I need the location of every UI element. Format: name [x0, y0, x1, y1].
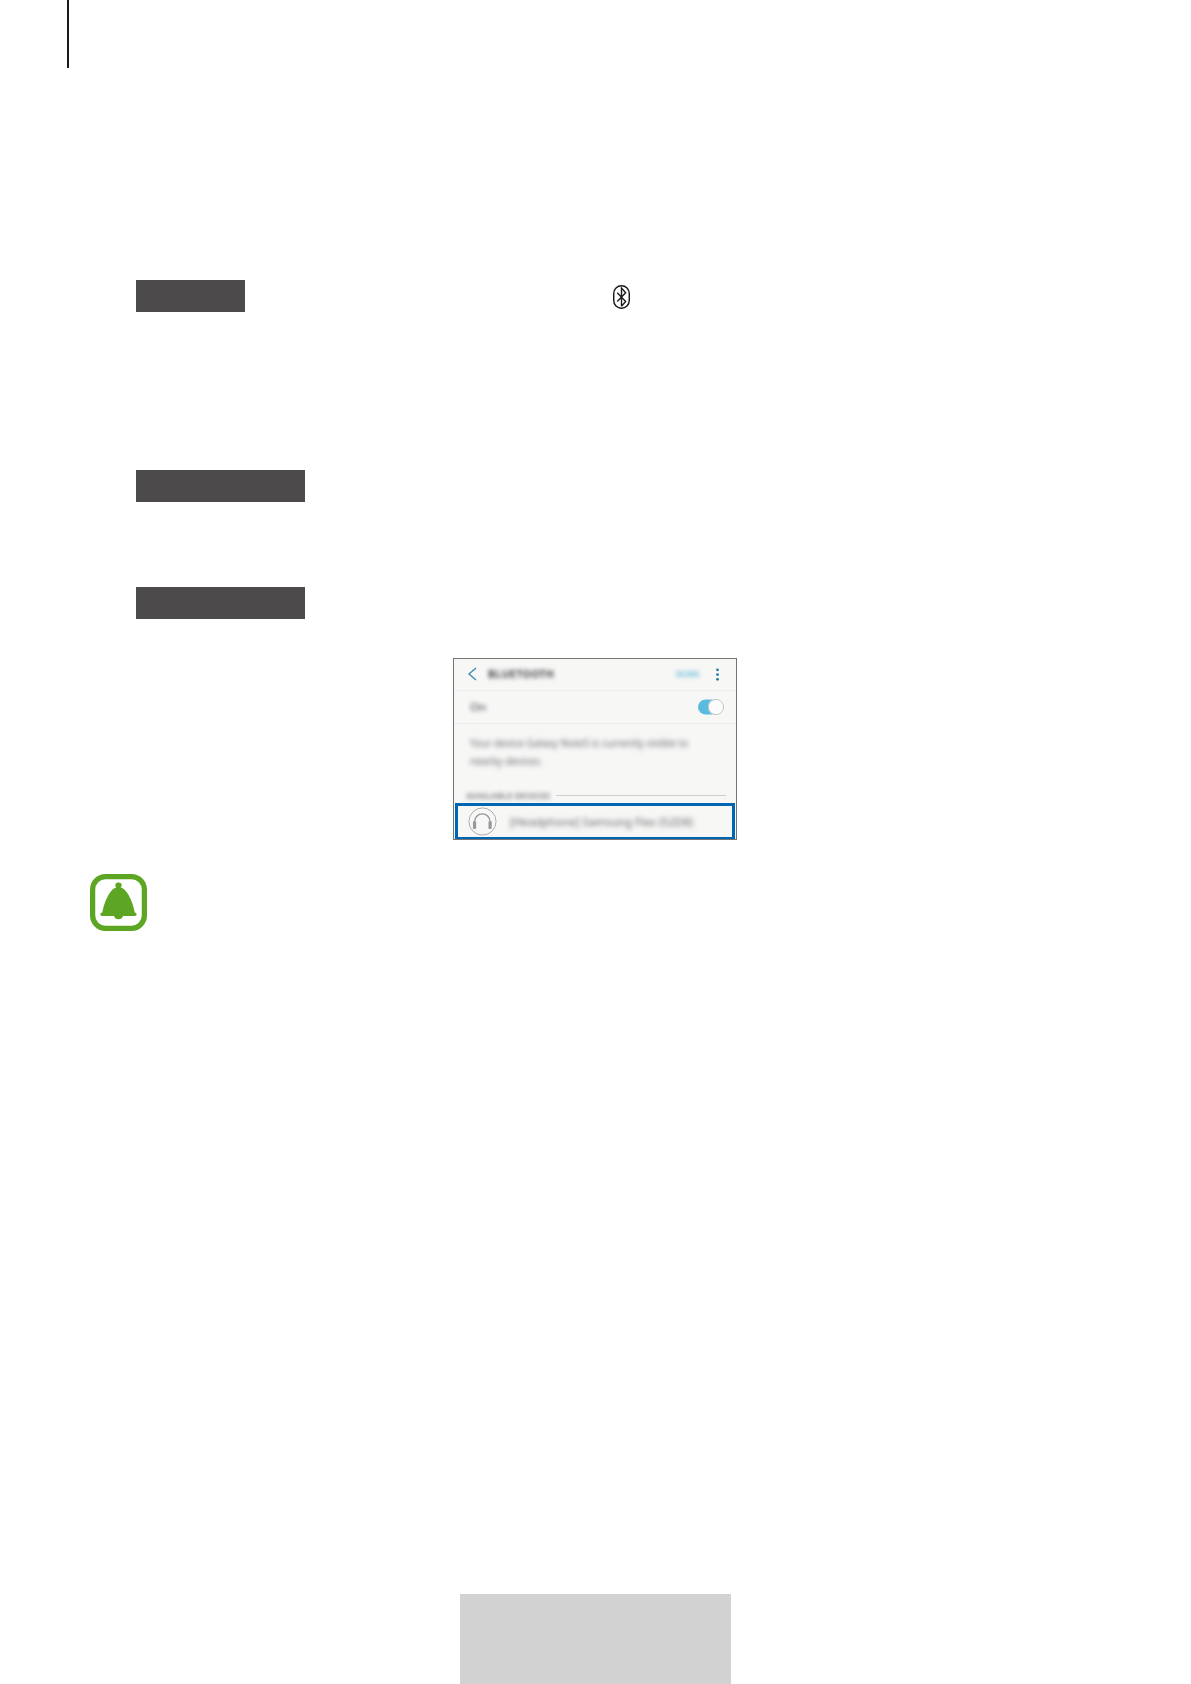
- button[interactable]: Back: [453, 658, 737, 690]
- button[interactable]: SCAN: [676, 662, 699, 686]
- staticText: On: [470, 699, 487, 715]
- staticText: nearby devices.: [470, 754, 543, 768]
- button[interactable]: More options: [712, 667, 723, 681]
- staticText: [Headphone] Samsung Flex (52D8): [510, 814, 694, 829]
- other: Note: [90, 874, 147, 931]
- button[interactable]: Bluetooth on: [698, 699, 724, 715]
- button[interactable]: [Headphone] Samsung Flex (52D8): [455, 803, 735, 840]
- staticText: Your device Galaxy Note5 is currently vi…: [470, 736, 689, 750]
- staticText: AVAILABLE DEVICES: [466, 790, 551, 801]
- staticText: BLUETOOTH: [488, 667, 555, 681]
- staticText: SCAN: [676, 668, 699, 680]
- button[interactable]: On: [453, 691, 737, 723]
- button[interactable]: Bluetooth: [613, 285, 630, 309]
- button[interactable]: Back: [467, 666, 478, 682]
